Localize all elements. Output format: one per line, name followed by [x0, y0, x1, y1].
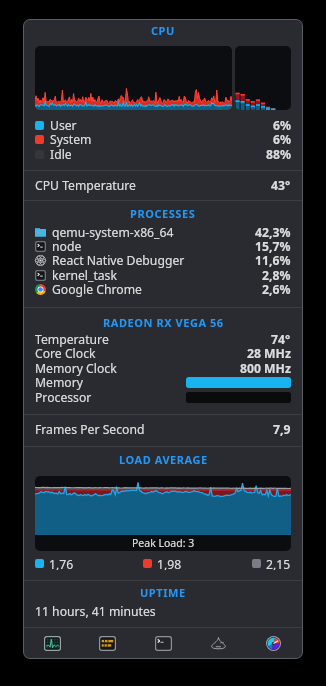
staticText: 7,9 [273, 421, 291, 438]
staticText: Idle [50, 146, 72, 163]
staticText: Processor [35, 389, 92, 406]
staticText: 2,15 [266, 556, 291, 570]
staticText: 15,7% [255, 238, 291, 255]
staticText: Peak Load: 3 [132, 536, 195, 550]
staticText: 6% [273, 117, 291, 134]
staticText: 1,98 [157, 556, 182, 570]
staticText: Core Clock [35, 345, 96, 362]
staticText: RADEON RX VEGA 56 [103, 315, 224, 329]
button[interactable]: React Native Debugger [23, 251, 303, 269]
button[interactable]: System [23, 130, 303, 148]
staticText: kernel_task [52, 267, 117, 284]
button[interactable]: Warp Terminal [99, 628, 116, 658]
button[interactable]: Activity Monitor [44, 628, 61, 658]
staticText: LOAD AVERAGE [119, 452, 208, 466]
staticText: 88% [266, 146, 291, 163]
staticText: 42,3% [255, 224, 291, 241]
staticText: Google Chrome [52, 281, 142, 298]
staticText: 74° [271, 331, 291, 348]
staticText: 1,76 [49, 556, 74, 570]
button[interactable]: Terminal [155, 628, 172, 658]
staticText: 2,6% [262, 281, 291, 298]
staticText: node [52, 238, 82, 255]
staticText: System [50, 131, 92, 148]
staticText: Memory [35, 374, 83, 391]
staticText: Temperature [35, 331, 109, 348]
staticText: 11 hours, 41 minutes [35, 603, 156, 620]
button[interactable]: kernel_task [23, 266, 303, 284]
staticText: User [50, 117, 77, 134]
staticText: 28 MHz [247, 345, 291, 362]
staticText: PROCESSES [130, 206, 196, 220]
staticText: Memory Clock [35, 360, 117, 377]
button[interactable]: User [23, 116, 303, 134]
staticText: qemu-system-x86_64 [52, 224, 174, 241]
button[interactable]: Temperature [23, 330, 303, 349]
button[interactable]: Memory Clock [23, 359, 303, 378]
staticText: 6% [273, 131, 291, 148]
staticText: UPTIME [140, 585, 186, 599]
button[interactable]: Memory [23, 373, 303, 392]
button[interactable]: Processor [23, 388, 303, 407]
button[interactable]: 1,98 [143, 556, 182, 570]
staticText: React Native Debugger [52, 252, 185, 269]
button[interactable]: iStat Menus [265, 628, 282, 658]
staticText: CPU Temperature [35, 177, 136, 194]
staticText: 2,8% [262, 267, 291, 284]
button[interactable]: 2,15 [252, 556, 291, 570]
button[interactable]: 11 hours, 41 minutes [23, 602, 303, 621]
button[interactable]: Google Chrome [23, 280, 303, 298]
button[interactable]: node [23, 237, 303, 255]
staticText: CPU [151, 23, 175, 37]
staticText: 43° [271, 177, 291, 194]
button[interactable]: 1,76 [35, 556, 74, 570]
button[interactable]: Frames Per Second [23, 420, 303, 439]
button[interactable]: Idle [23, 145, 303, 163]
button[interactable]: CPU Temperature [23, 176, 303, 195]
button[interactable]: Core Clock [23, 344, 303, 363]
staticText: 11,6% [255, 252, 291, 269]
staticText: 800 MHz [240, 360, 291, 377]
staticText: Frames Per Second [35, 421, 145, 438]
button[interactable]: Alembic [210, 628, 227, 658]
button[interactable]: qemu-system-x86_64 [23, 223, 303, 241]
